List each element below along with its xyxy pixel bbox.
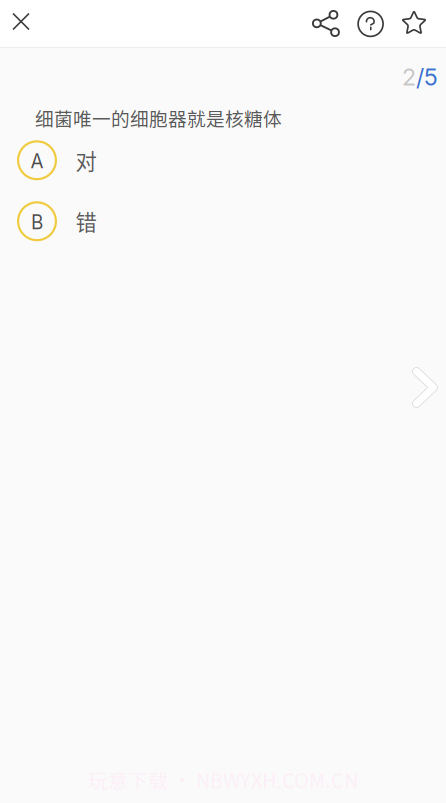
staticText: 对 bbox=[75, 145, 96, 176]
button[interactable]: Favourite bbox=[394, 1, 434, 45]
button[interactable]: Close bbox=[0, 0, 42, 45]
staticText: A bbox=[30, 150, 43, 173]
staticText: 错 bbox=[75, 206, 96, 237]
button[interactable]: Next question bbox=[403, 361, 446, 413]
staticText: 细菌唯一的细胞器就是核糖体 bbox=[35, 104, 282, 131]
button[interactable]: Help bbox=[351, 2, 391, 46]
staticText: B bbox=[31, 211, 43, 234]
button[interactable]: B bbox=[0, 199, 446, 243]
staticText: 玩意下载 · NBWYXH.COM.CN bbox=[88, 765, 358, 794]
staticText: /5 bbox=[416, 63, 438, 91]
staticText: 2 bbox=[402, 63, 416, 91]
button[interactable]: Share bbox=[306, 1, 346, 45]
button[interactable]: A bbox=[0, 138, 446, 182]
